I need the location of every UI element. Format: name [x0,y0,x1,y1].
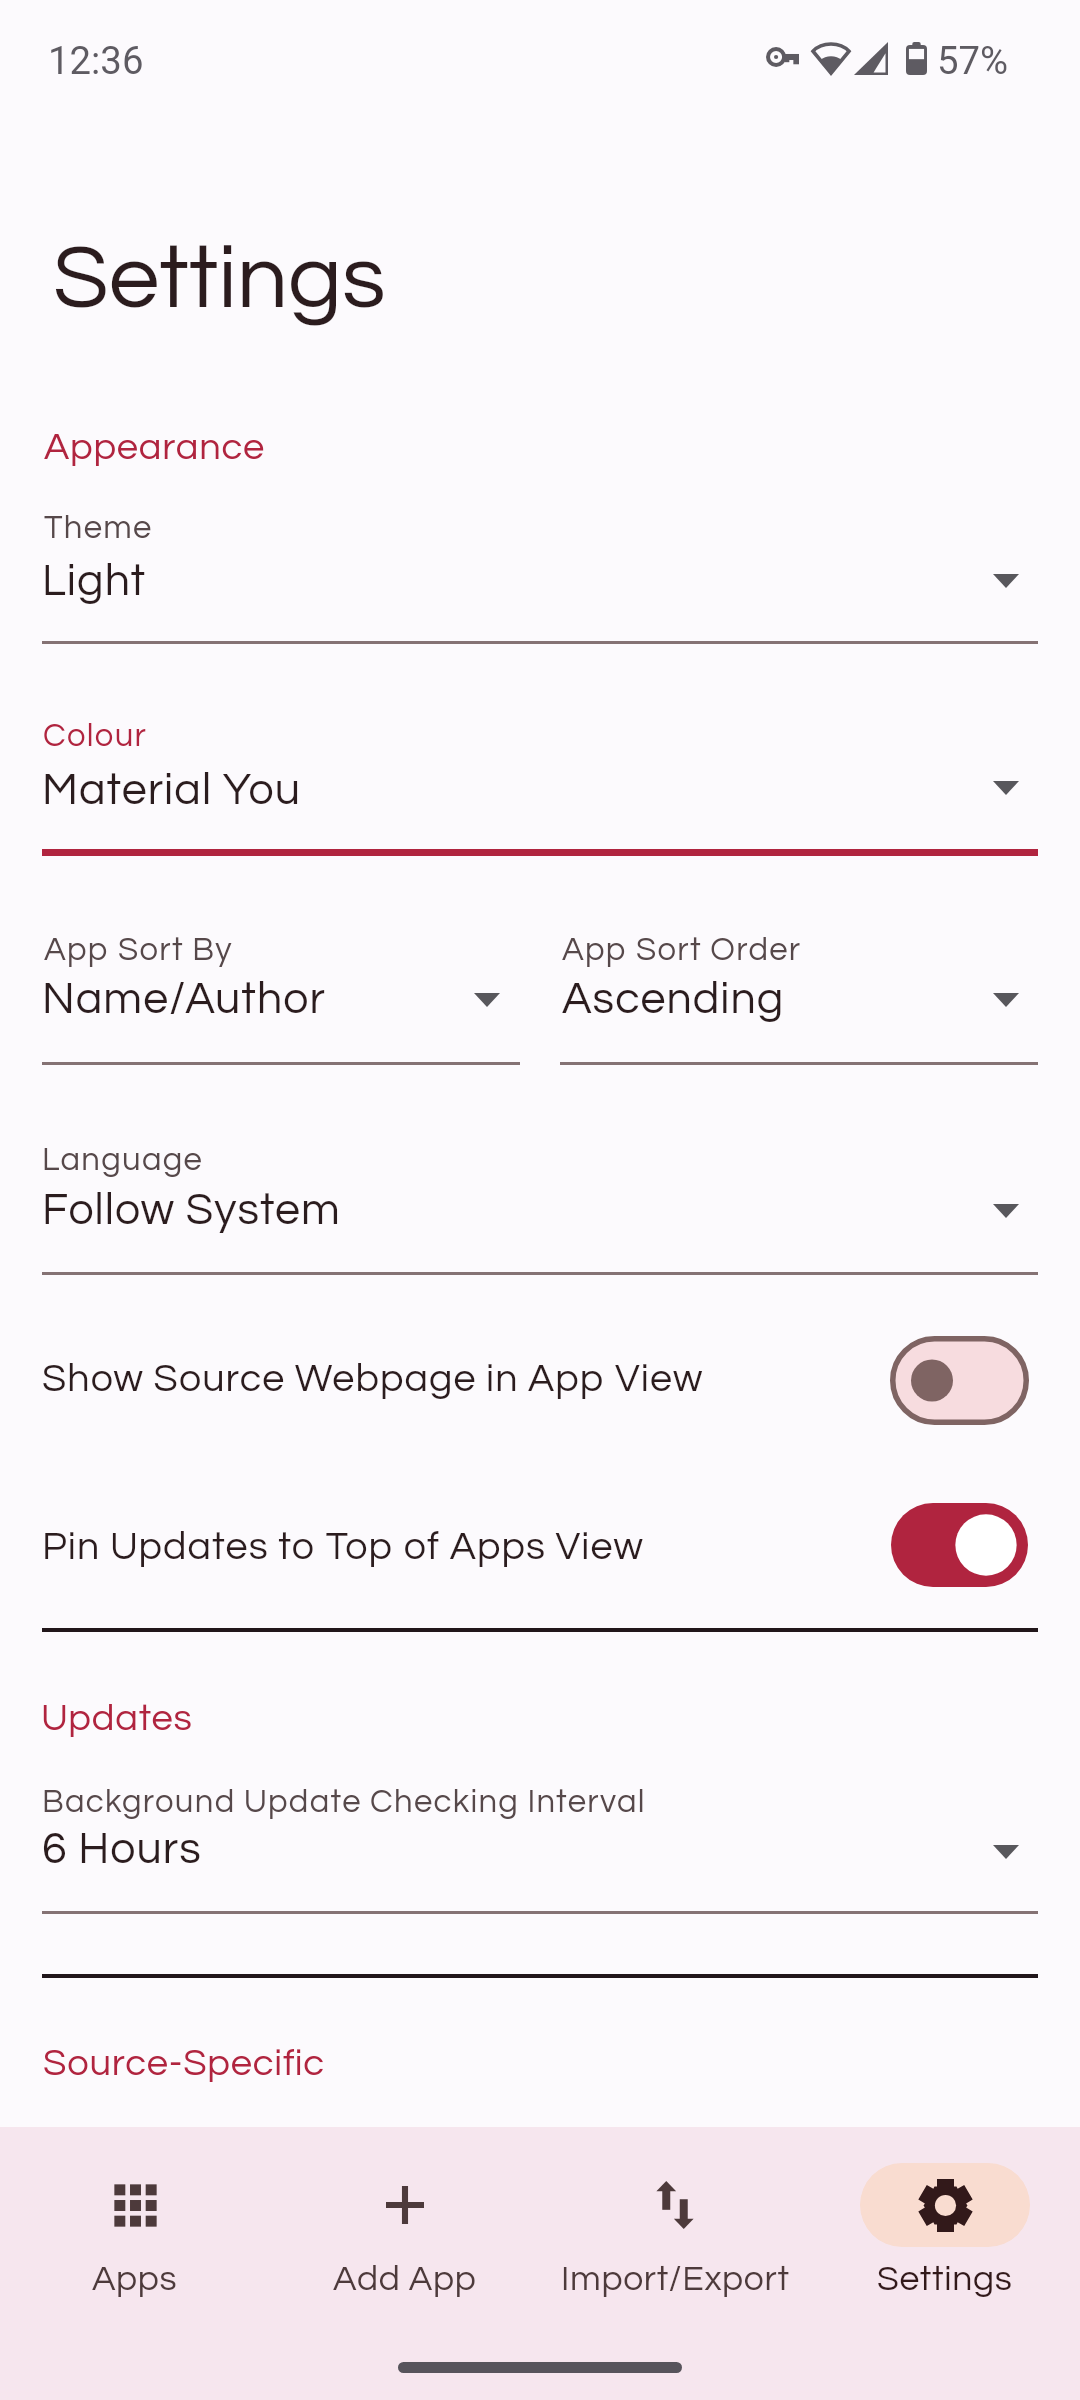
staticText: Ascending [562,976,785,1022]
staticText: App Sort Order [562,933,802,967]
button[interactable]: App Sort By [0,915,540,1075]
staticText: 12:36 [48,38,144,83]
staticText: 6 Hours [42,1826,202,1872]
staticText: Apps [92,2261,178,2298]
button[interactable]: Add App [270,2127,540,2298]
staticText: 57% [937,38,1009,83]
other: Settings [919,2179,972,2232]
staticText: Add App [333,2261,477,2298]
staticText: App Sort By [44,933,233,967]
button[interactable]: Language [0,1125,1080,1285]
button[interactable]: Show Source Webpage in App View [0,1300,1080,1440]
button[interactable]: Theme [0,490,1080,650]
button[interactable]: Settings [810,2127,1080,2298]
button[interactable]: Apps [0,2127,270,2298]
staticText: Language [42,1143,204,1177]
button[interactable]: Background Update Checking Interval [0,1766,1080,1926]
staticText: Background Update Checking Interval [42,1785,646,1819]
staticText: Source-Specific [43,2044,325,2083]
staticText: Name/Author [42,976,326,1022]
other: Add App [386,2186,424,2224]
staticText: Settings [877,2261,1013,2298]
staticText: Theme [44,511,153,545]
button[interactable]: App Sort Order [540,915,1080,1075]
other: Import/Export [656,2181,694,2229]
button[interactable]: Pin Updates to Top of Apps View [0,1468,1080,1608]
staticText: Settings [53,233,386,326]
staticText: Follow System [42,1187,341,1233]
staticText: Appearance [44,428,265,467]
button[interactable]: Import/Export [540,2127,810,2298]
staticText: Material You [42,767,301,813]
staticText: Show Source Webpage in App View [42,1359,704,1400]
other: Apps [112,2182,159,2229]
button[interactable]: Colour [0,700,1080,860]
staticText: Light [42,558,147,604]
staticText: Import/Export [561,2261,790,2298]
staticText: Colour [43,719,148,753]
staticText: Pin Updates to Top of Apps View [42,1527,645,1568]
staticText: Updates [41,1699,193,1738]
